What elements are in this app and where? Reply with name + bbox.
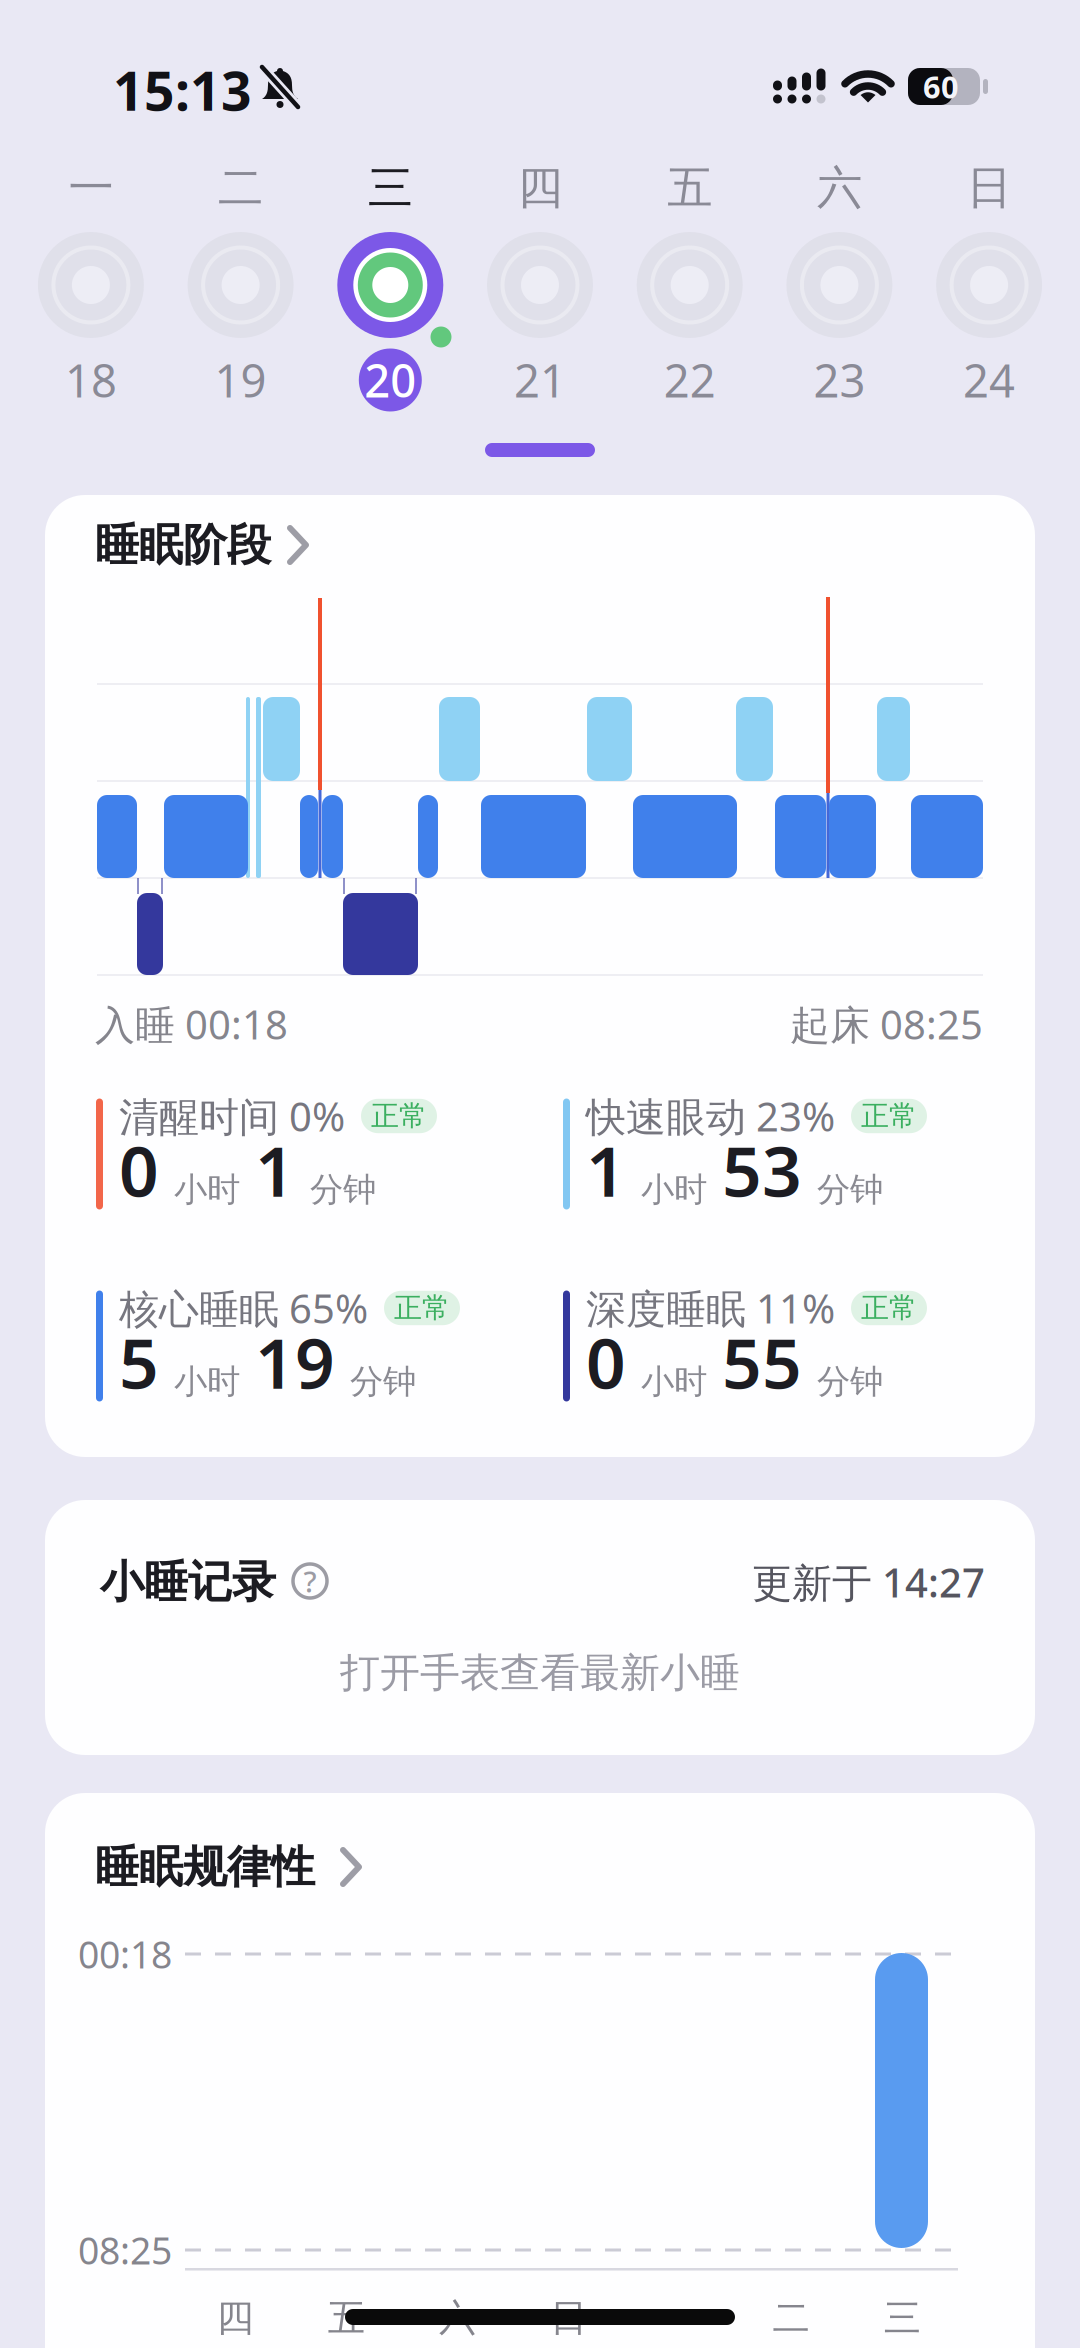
staticText: 19 (255, 1316, 335, 1408)
staticText: 分钟 (310, 1169, 376, 1210)
staticText: 分钟 (350, 1361, 416, 1402)
staticText: 0 (119, 1124, 159, 1216)
staticText: 起床 08:25 (790, 997, 983, 1050)
staticText: 三 (884, 2295, 921, 2341)
staticText: 小时 (641, 1361, 707, 1402)
staticText: 日 (967, 160, 1012, 216)
staticText: 睡眠规律性 (95, 1840, 315, 1894)
staticText: 正常 (394, 1291, 450, 1325)
staticText: 打开手表查看最新小睡 (340, 1648, 740, 1697)
staticText: 二 (218, 160, 263, 216)
staticText: 21 (514, 350, 566, 410)
staticText: 23 (813, 350, 865, 410)
staticText: 53 (722, 1124, 802, 1216)
staticText: 00:18 (78, 1929, 172, 1979)
staticText: 18 (65, 350, 117, 410)
staticText: 小时 (174, 1169, 240, 1210)
staticText: 四 (216, 2295, 253, 2341)
staticText: 五 (667, 160, 712, 216)
button[interactable]: 六 (765, 145, 914, 445)
staticText: 睡眠阶段 (95, 518, 271, 572)
staticText: 22 (664, 350, 716, 410)
staticText: 深度睡眠 11% (586, 1281, 835, 1334)
staticText: ? (303, 1561, 316, 1600)
button[interactable]: 二 (166, 145, 315, 445)
staticText: 20 (364, 350, 416, 410)
staticText: 15:13 (113, 55, 252, 125)
staticText: 0 (586, 1316, 626, 1408)
staticText: 1 (586, 1124, 626, 1216)
staticText: 更新于 14:27 (752, 1555, 985, 1608)
staticText: 一 (68, 160, 113, 216)
button[interactable]: 三 (316, 145, 465, 445)
staticText: 日 (550, 2295, 587, 2341)
staticText: 分钟 (817, 1169, 883, 1210)
staticText: 小睡记录 (100, 1555, 276, 1609)
staticText: 55 (722, 1316, 802, 1408)
staticText: 三 (368, 160, 413, 216)
staticText: 小时 (174, 1361, 240, 1402)
staticText: 核心睡眠 65% (119, 1281, 368, 1334)
staticText: 快速眼动 23% (586, 1089, 835, 1142)
staticText: 分钟 (817, 1361, 883, 1402)
staticText: 60 (923, 66, 959, 107)
button[interactable]: 五 (615, 145, 764, 445)
staticText: 入睡 00:18 (95, 997, 288, 1050)
staticText: 清醒时间 0% (119, 1089, 345, 1142)
staticText: 六 (817, 160, 862, 216)
button[interactable]: 帮助 (287, 1558, 333, 1604)
staticText: 小时 (641, 1169, 707, 1210)
staticText: 二 (772, 2295, 809, 2341)
staticText: 正常 (861, 1291, 917, 1325)
button[interactable]: 一 (16, 145, 165, 445)
button[interactable]: 日 (915, 145, 1064, 445)
staticText: 六 (439, 2295, 476, 2341)
button[interactable]: 睡眠规律性 (95, 1827, 495, 1907)
staticText: 24 (963, 350, 1015, 410)
staticText: 四 (517, 160, 562, 216)
staticText: 08:25 (78, 2225, 172, 2275)
staticText: 五 (328, 2295, 365, 2341)
staticText: 一 (661, 2295, 698, 2341)
staticText: 1 (255, 1124, 295, 1216)
staticText: 5 (119, 1316, 159, 1408)
button[interactable]: 睡眠阶段 (95, 505, 435, 585)
button[interactable]: 四 (465, 145, 614, 445)
staticText: 19 (215, 350, 267, 410)
staticText: 正常 (861, 1099, 917, 1133)
staticText: 正常 (371, 1099, 427, 1133)
